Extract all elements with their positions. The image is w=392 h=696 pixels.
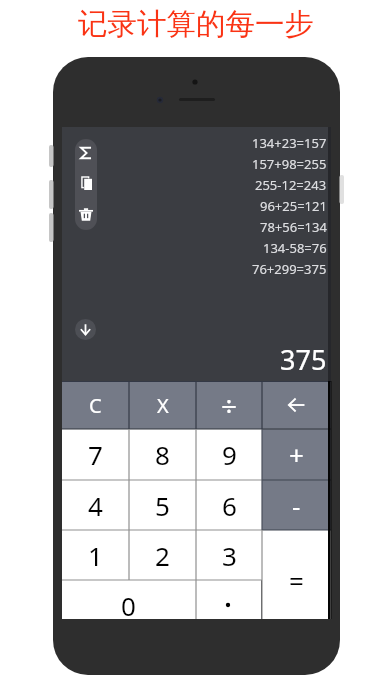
button[interactable]: 1 [62, 530, 129, 580]
staticText: = [289, 563, 304, 598]
button[interactable]: 2 [129, 530, 196, 580]
staticText: 255-12=243 [255, 176, 327, 194]
button[interactable]: 9 [196, 429, 262, 480]
button[interactable]: Sum [75, 142, 97, 164]
staticText: 1 [88, 538, 103, 573]
staticText: 3 [222, 538, 237, 573]
staticText: 5 [155, 488, 170, 523]
button[interactable]: 8 [129, 429, 196, 480]
button[interactable]: 0 [62, 580, 195, 619]
button[interactable]: - [262, 480, 331, 530]
staticText: + [289, 437, 304, 472]
staticText: 7 [88, 437, 103, 472]
button[interactable]: Delete [75, 203, 97, 225]
button[interactable]: C [62, 381, 129, 429]
button[interactable]: Scroll to bottom [75, 319, 96, 340]
button[interactable]: 7 [62, 429, 129, 480]
staticText: 78+56=134 [260, 218, 327, 236]
staticText: ÷ [221, 386, 238, 424]
staticText: 6 [222, 488, 237, 523]
staticText: 8 [155, 437, 170, 472]
button[interactable]: 4 [62, 480, 129, 530]
staticText: X [157, 392, 169, 419]
button[interactable]: Backspace [262, 381, 331, 429]
button[interactable]: = [262, 530, 331, 619]
staticText: 0 [121, 588, 136, 619]
staticText: 157+98=255 [252, 155, 327, 173]
button[interactable]: 3 [196, 530, 262, 580]
button[interactable]: 5 [129, 480, 196, 530]
staticText: 76+299=375 [252, 260, 327, 278]
staticText: - [292, 488, 301, 523]
button[interactable]: Copy [75, 172, 97, 194]
staticText: 134-58=76 [263, 239, 327, 257]
staticText: C [89, 392, 102, 419]
button[interactable]: Decimal point [195, 580, 261, 619]
staticText: 记录计算的每一步 [78, 6, 314, 43]
staticText: 4 [88, 488, 103, 523]
button[interactable]: X [129, 381, 196, 429]
staticText: 375 [280, 341, 327, 375]
button[interactable]: ÷ [196, 381, 262, 429]
staticText: 134+23=157 [252, 134, 327, 152]
staticText: 96+25=121 [260, 197, 327, 215]
staticText: 9 [222, 437, 237, 472]
staticText: 2 [155, 538, 170, 573]
button[interactable]: 6 [196, 480, 262, 530]
button[interactable]: + [262, 429, 331, 480]
